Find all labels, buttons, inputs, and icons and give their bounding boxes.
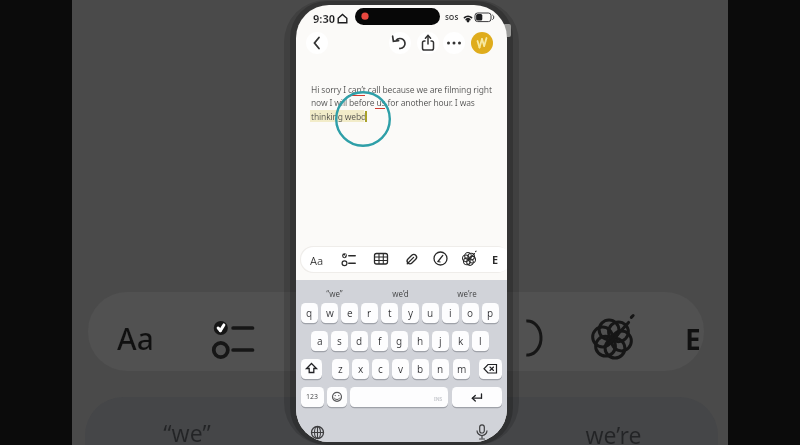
button[interactable]: v: [392, 359, 409, 379]
staticText: a: [317, 334, 323, 348]
button[interactable]: [475, 424, 489, 441]
button[interactable]: a: [311, 331, 328, 351]
button[interactable]: u: [422, 303, 439, 323]
button[interactable]: l: [472, 331, 489, 351]
staticText: k: [458, 334, 464, 348]
staticText: E: [685, 320, 701, 358]
staticText: Aa: [310, 253, 324, 268]
button[interactable]: k: [452, 331, 469, 351]
staticText: f: [378, 334, 382, 348]
button[interactable]: n: [432, 359, 449, 379]
staticText: y: [408, 306, 414, 320]
button[interactable]: q: [301, 303, 318, 323]
staticText: b: [417, 362, 424, 376]
button[interactable]: [417, 32, 439, 54]
button[interactable]: z: [332, 359, 349, 379]
button[interactable]: p: [482, 303, 499, 323]
staticText: we’re: [457, 288, 477, 299]
staticText: q: [306, 306, 313, 320]
staticText: “we”: [163, 417, 211, 445]
staticText: u: [427, 306, 434, 320]
button[interactable]: [327, 387, 347, 407]
button[interactable]: h: [412, 331, 429, 351]
staticText: we’re: [585, 419, 642, 445]
staticText: w: [326, 306, 334, 320]
staticText: Aa: [117, 318, 154, 359]
button[interactable]: i: [442, 303, 459, 323]
staticText: z: [338, 362, 343, 376]
staticText: r: [367, 306, 372, 320]
button[interactable]: e: [341, 303, 358, 323]
button[interactable]: w: [321, 303, 338, 323]
button[interactable]: [479, 359, 502, 379]
staticText: Hi sorry I can’t call because we are fil…: [311, 84, 492, 96]
staticText: e: [347, 306, 353, 320]
button[interactable]: g: [391, 331, 408, 351]
staticText: E: [492, 252, 499, 267]
button[interactable]: 123: [301, 387, 324, 407]
staticText: 123: [306, 392, 319, 402]
button[interactable]: [301, 359, 322, 379]
staticText: x: [358, 362, 364, 376]
button[interactable]: s: [331, 331, 348, 351]
staticText: n: [437, 362, 444, 376]
button[interactable]: x: [352, 359, 369, 379]
staticText: h: [417, 334, 424, 348]
staticText: 9:30: [313, 11, 335, 26]
button[interactable]: c: [372, 359, 389, 379]
staticText: i: [449, 306, 452, 320]
button[interactable]: y: [402, 303, 419, 323]
staticText: m: [457, 362, 467, 376]
staticText: now I will before us for another hour. I…: [311, 97, 475, 109]
button[interactable]: m: [453, 359, 470, 379]
staticText: thinking webd: [311, 111, 367, 123]
staticText: l: [479, 334, 482, 348]
staticText: p: [487, 306, 494, 320]
staticText: c: [378, 362, 383, 376]
button[interactable]: t: [381, 303, 398, 323]
staticText: d: [356, 334, 363, 348]
button[interactable]: j: [432, 331, 449, 351]
button[interactable]: r: [361, 303, 378, 323]
staticText: o: [467, 306, 474, 320]
button[interactable]: [471, 32, 493, 54]
staticText: v: [398, 362, 404, 376]
button[interactable]: [452, 387, 502, 407]
staticText: “we”: [326, 288, 343, 299]
staticText: j: [439, 334, 442, 348]
button[interactable]: [389, 32, 411, 54]
staticText: SOS: [445, 13, 459, 23]
button[interactable]: o: [462, 303, 479, 323]
button[interactable]: [306, 32, 328, 54]
button[interactable]: INS: [350, 387, 448, 407]
staticText: g: [396, 334, 403, 348]
staticText: INS: [434, 396, 443, 403]
button[interactable]: [443, 32, 465, 54]
button[interactable]: b: [412, 359, 429, 379]
staticText: s: [337, 334, 342, 348]
button[interactable]: [310, 425, 325, 440]
button[interactable]: d: [351, 331, 368, 351]
staticText: we’d: [392, 288, 409, 299]
button[interactable]: f: [371, 331, 388, 351]
staticText: t: [388, 306, 392, 320]
